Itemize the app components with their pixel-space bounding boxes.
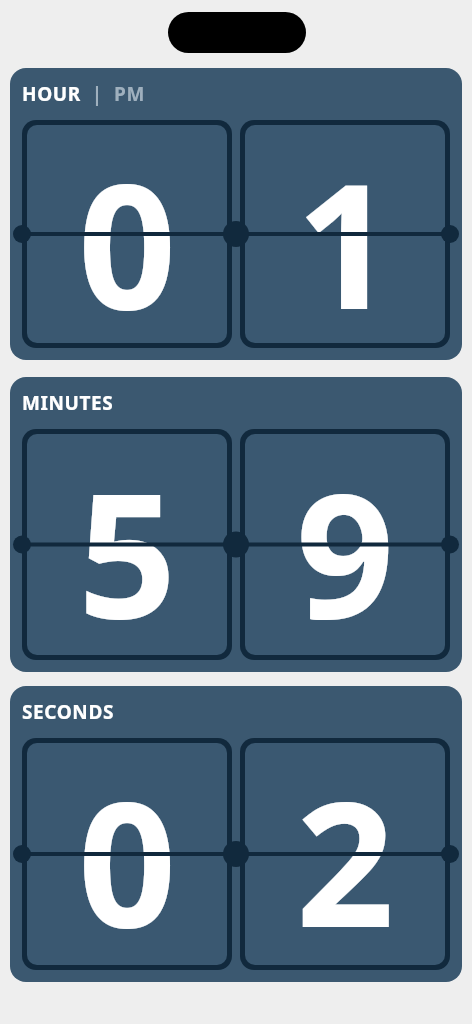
staticText: 5 xyxy=(78,434,177,655)
staticText: 0 xyxy=(78,743,177,965)
button[interactable]: Digit 9 xyxy=(245,434,445,655)
staticText: 0 xyxy=(78,125,177,343)
button[interactable]: Digit 2 xyxy=(245,743,445,965)
staticText: HOUR | PM xyxy=(22,81,145,107)
staticText: 1 xyxy=(296,125,395,343)
button[interactable]: Digit 0 xyxy=(27,743,227,965)
button[interactable]: MINUTES xyxy=(10,377,462,672)
staticText: 2 xyxy=(296,743,395,965)
button[interactable]: Digit 0 xyxy=(27,125,227,343)
staticText: 9 xyxy=(296,434,395,655)
button[interactable]: HOUR | PM xyxy=(10,68,462,360)
staticText: MINUTES xyxy=(22,390,114,416)
button[interactable]: SECONDS xyxy=(10,686,462,982)
button[interactable]: Digit 5 xyxy=(27,434,227,655)
button[interactable]: Digit 1 xyxy=(245,125,445,343)
staticText: SECONDS xyxy=(22,699,114,725)
